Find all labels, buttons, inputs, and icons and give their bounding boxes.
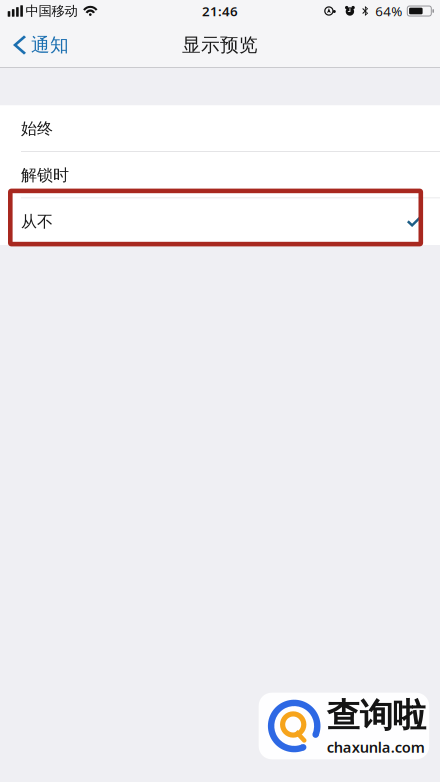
- staticText: 显示预览: [182, 33, 258, 56]
- staticText: 64%: [375, 2, 402, 20]
- button[interactable]: 解锁时: [0, 152, 440, 198]
- button[interactable]: 从不: [0, 198, 440, 245]
- staticText: 21:46: [202, 2, 238, 20]
- staticText: 查询啦: [327, 695, 426, 736]
- button[interactable]: 始终: [0, 105, 440, 152]
- staticText: 从不: [21, 212, 53, 232]
- staticText: 中国移动: [26, 3, 78, 19]
- staticText: 解锁时: [21, 165, 69, 185]
- button[interactable]: 通知: [0, 22, 81, 68]
- staticText: 始终: [21, 119, 53, 139]
- staticText: chaxunla.com: [327, 737, 425, 757]
- staticText: 通知: [31, 33, 69, 56]
